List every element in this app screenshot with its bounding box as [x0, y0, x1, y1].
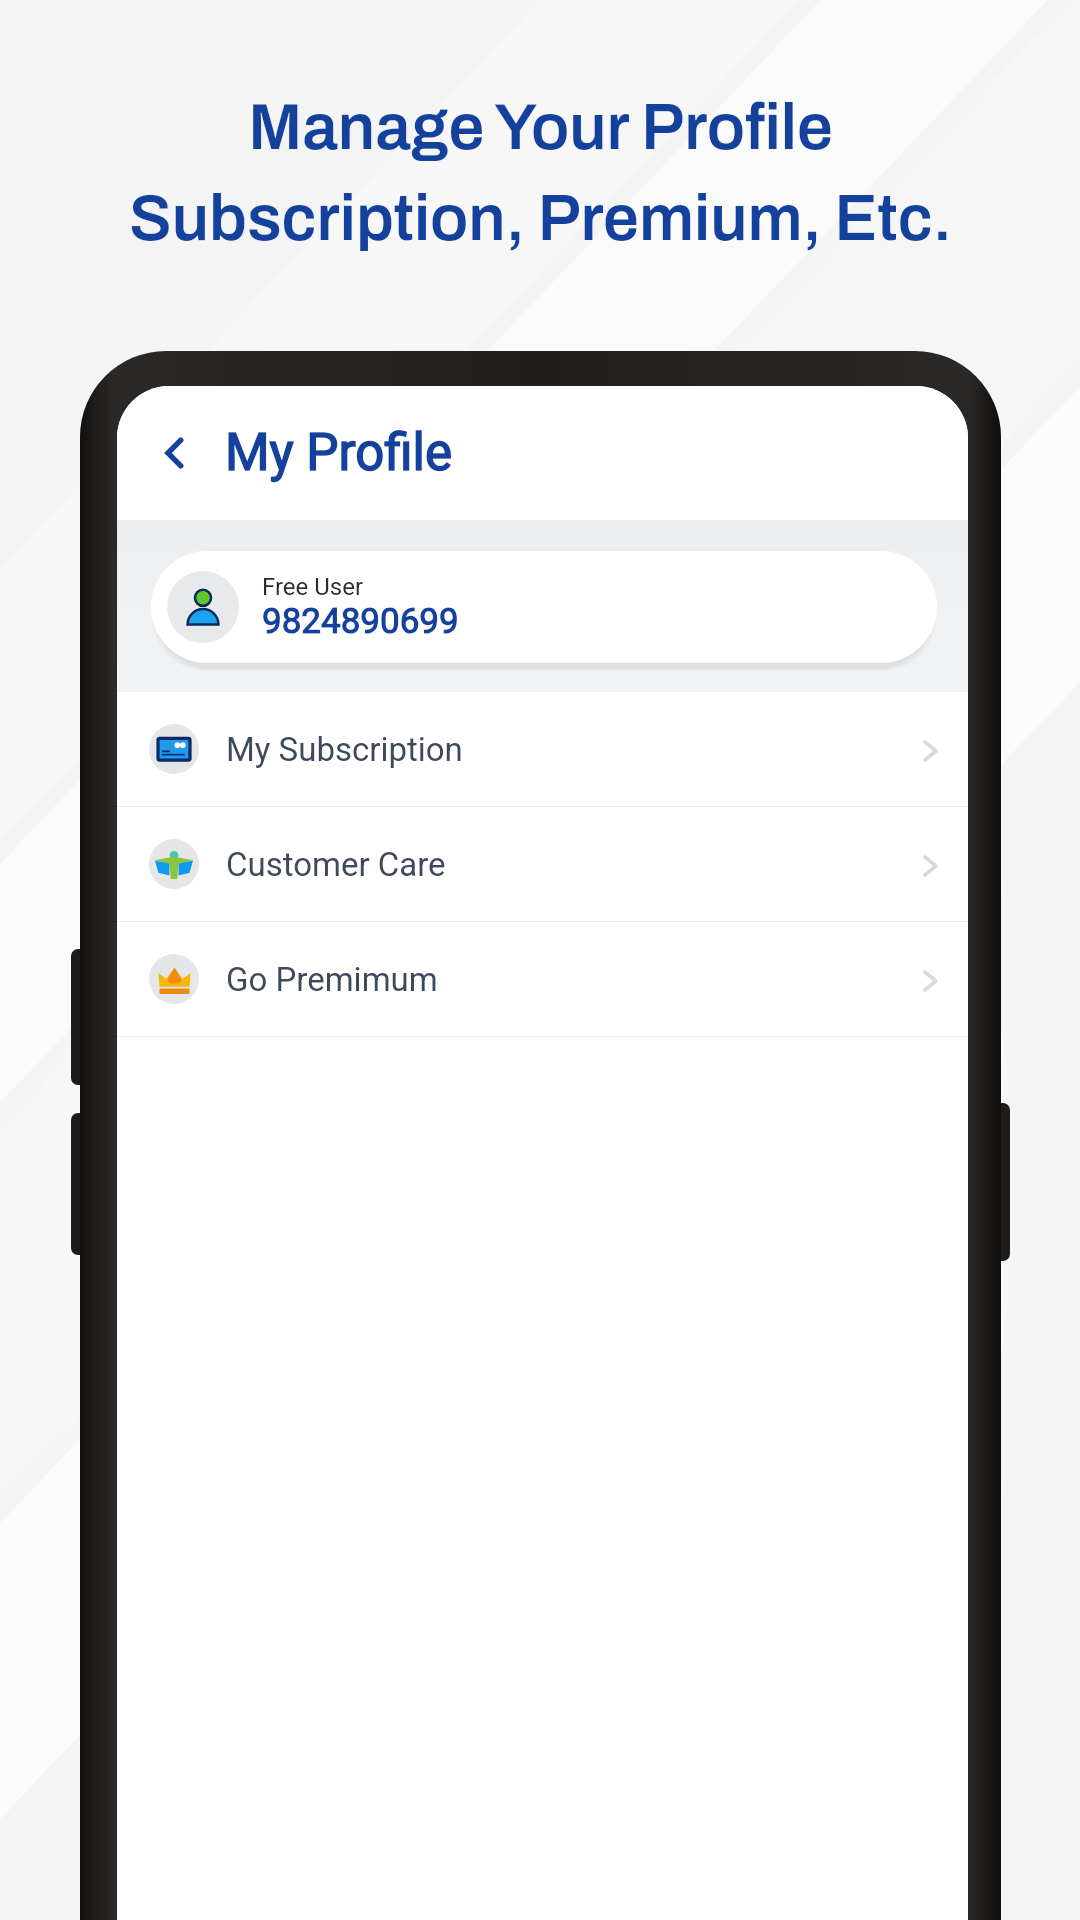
- staticText: My Profile: [225, 423, 453, 483]
- staticText: 9824890699: [262, 601, 459, 642]
- staticText: Go Premimum: [226, 960, 438, 999]
- staticText: Free User: [262, 573, 364, 601]
- button[interactable]: Go Premimum: [117, 922, 968, 1036]
- staticText: Subscription, Premium, Etc.: [129, 184, 952, 254]
- button[interactable]: Free User: [151, 551, 937, 663]
- staticText: My Subscription: [226, 730, 463, 769]
- button[interactable]: Customer Care: [117, 807, 968, 921]
- staticText: Customer Care: [226, 845, 446, 884]
- button[interactable]: My Subscription: [117, 692, 968, 806]
- staticText: Manage Your Profile: [248, 93, 833, 163]
- button[interactable]: Back: [145, 424, 203, 482]
